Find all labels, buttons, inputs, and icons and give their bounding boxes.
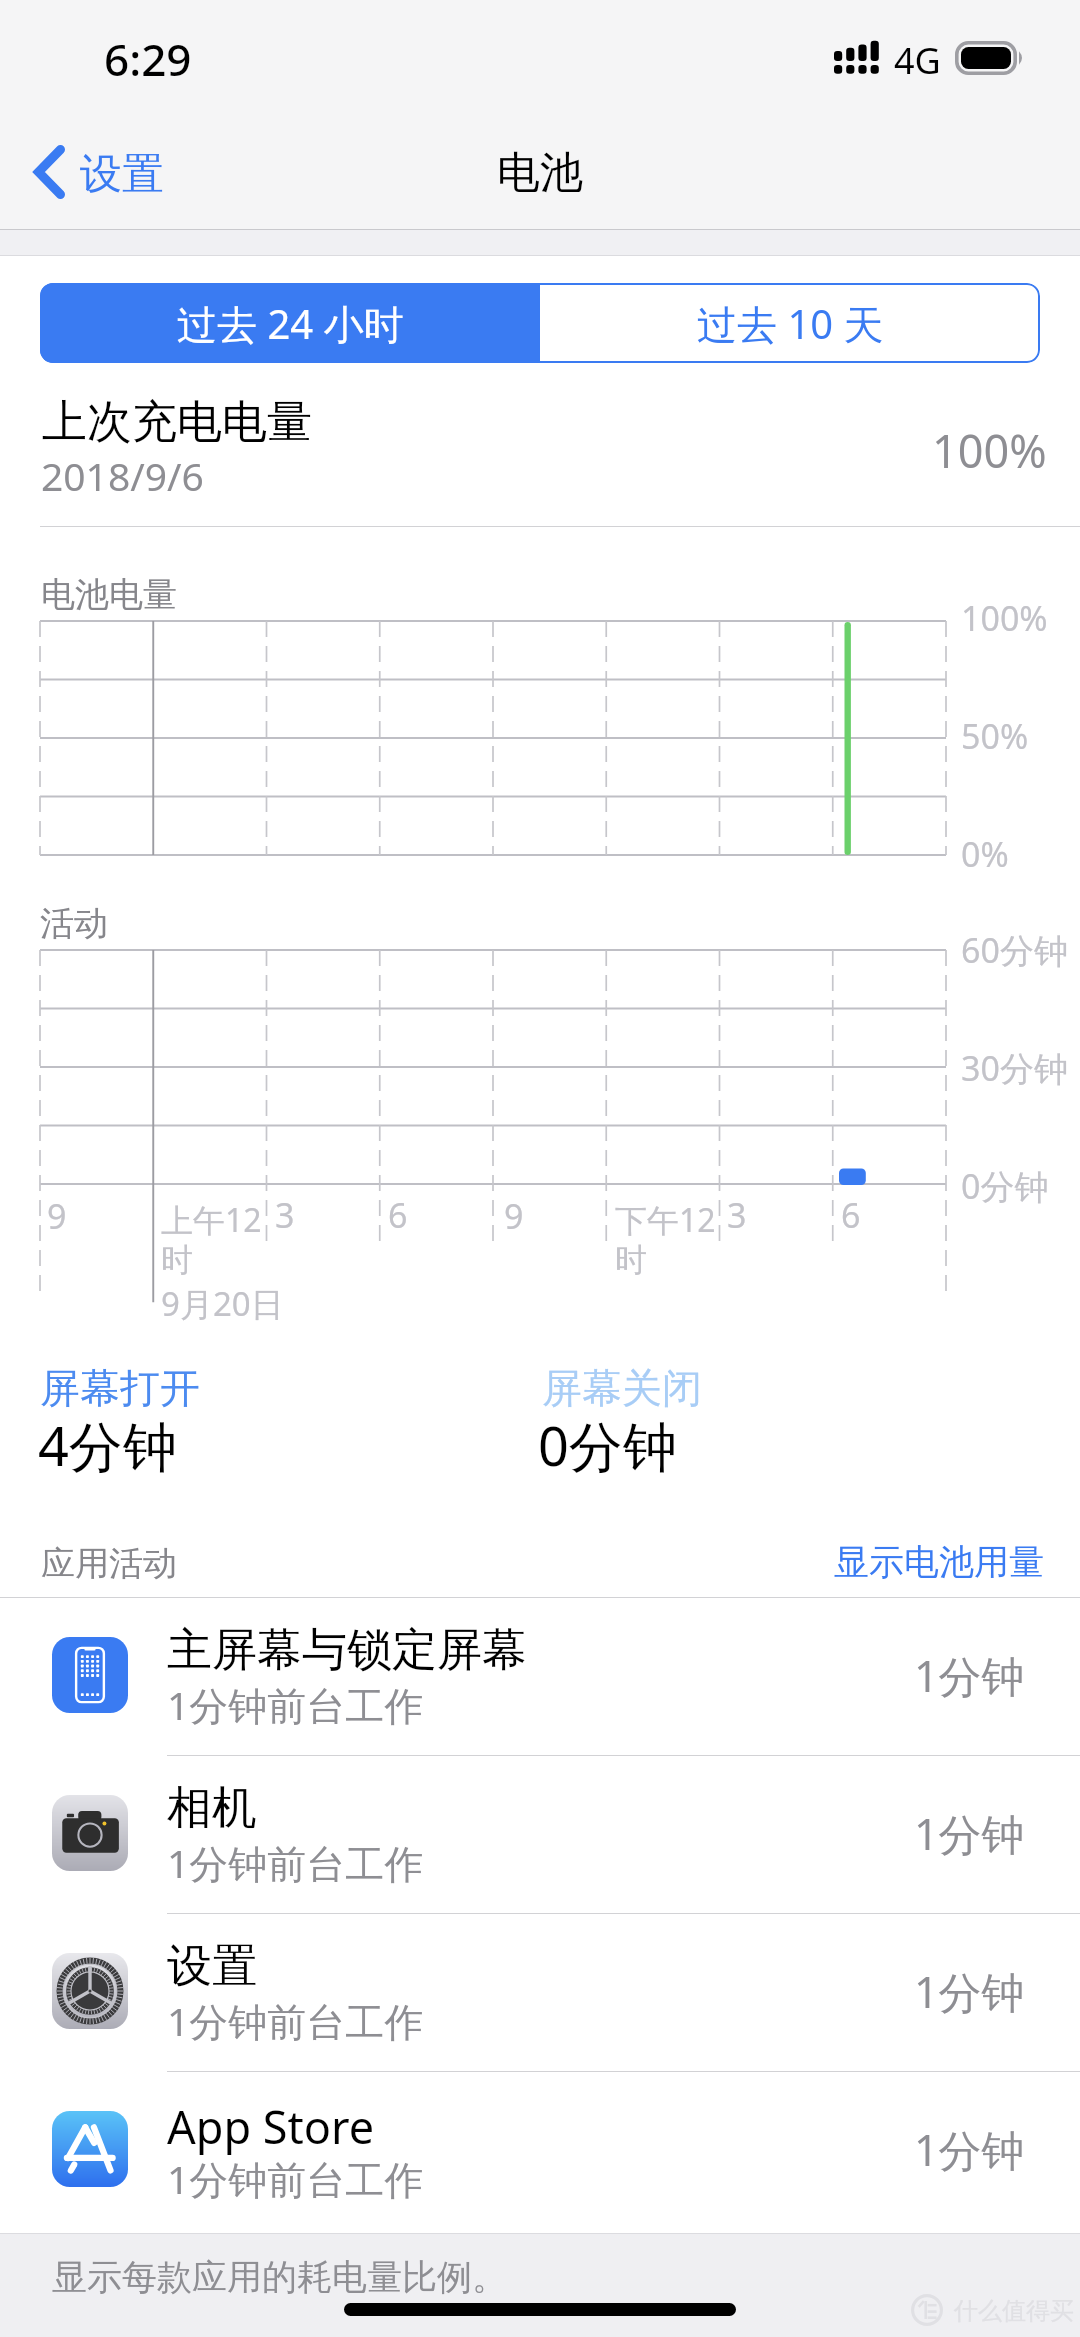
other: Battery full	[955, 41, 1025, 75]
button[interactable]: 主屏幕与锁定屏幕	[0, 1598, 1080, 1755]
staticText: 1分钟前台工作	[167, 1678, 424, 1731]
staticText: 什么值得买	[954, 2296, 1074, 2326]
button[interactable]: 显示电池用量	[825, 1531, 1053, 1593]
staticText: 1分钟	[914, 1646, 1025, 1705]
staticText: 0分钟	[538, 1408, 677, 1482]
staticText: 相机	[167, 1780, 257, 1837]
staticText: 时	[161, 1240, 193, 1280]
staticText: 3	[727, 1192, 747, 1238]
staticText: 下午12	[615, 1198, 716, 1242]
staticText: 1分钟	[914, 1804, 1025, 1863]
staticText: 1分钟前台工作	[167, 1994, 424, 2047]
staticText: 上次充电电量	[42, 394, 312, 451]
staticText: 过去 24 小时	[177, 296, 404, 351]
button[interactable]: App Store	[0, 2072, 1080, 2229]
staticText: 电池电量	[41, 573, 177, 616]
staticText: App Store	[167, 2096, 375, 2157]
staticText: 6	[841, 1192, 861, 1238]
staticText: 显示电池用量	[834, 1540, 1044, 1584]
staticText: 主屏幕与锁定屏幕	[167, 1622, 527, 1679]
staticText: 100%	[961, 595, 1048, 641]
staticText: 1分钟	[914, 1962, 1025, 2021]
other: Cellular signal	[834, 40, 880, 74]
staticText: 活动	[40, 902, 108, 945]
staticText: 6	[388, 1192, 408, 1238]
staticText: 过去 10 天	[697, 296, 884, 351]
staticText: 电池	[497, 146, 583, 200]
button[interactable]: 设置	[16, 126, 186, 216]
staticText: 2018/9/6	[41, 449, 204, 502]
button[interactable]: 相机	[0, 1756, 1080, 1913]
staticText: 1分钟前台工作	[167, 1836, 424, 1889]
staticText: 0%	[961, 831, 1009, 877]
staticText: 0分钟	[961, 1163, 1049, 1209]
staticText: 屏幕打开	[40, 1363, 200, 1413]
staticText: 9月20日	[161, 1281, 284, 1326]
staticText: 60分钟	[961, 927, 1068, 973]
staticText: 100%	[932, 420, 1047, 481]
staticText: 设置	[167, 1938, 257, 1995]
staticText: 时	[615, 1240, 647, 1280]
staticText: 4G	[894, 36, 941, 85]
staticText: 9	[504, 1193, 524, 1239]
button[interactable]: 过去 24 小时	[40, 283, 540, 363]
staticText: 30分钟	[961, 1045, 1068, 1091]
staticText: 设置	[80, 148, 164, 201]
staticText: 4分钟	[38, 1408, 177, 1482]
staticText: 1分钟	[914, 2120, 1025, 2179]
staticText: 3	[275, 1192, 295, 1238]
staticText: 应用活动	[41, 1542, 177, 1585]
staticText: 上午12	[161, 1198, 262, 1242]
staticText: 1分钟前台工作	[167, 2152, 424, 2205]
staticText: 显示每款应用的耗电量比例。	[52, 2255, 507, 2299]
staticText: 9	[47, 1193, 67, 1239]
staticText: 50%	[961, 713, 1029, 759]
button[interactable]: 过去 10 天	[540, 283, 1040, 363]
staticText: 6:29	[104, 29, 192, 89]
button[interactable]: 设置	[0, 1914, 1080, 2071]
staticText: 屏幕关闭	[542, 1363, 702, 1413]
